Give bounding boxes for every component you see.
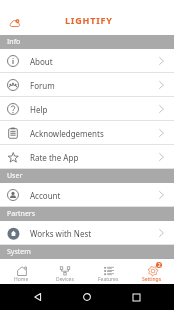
button[interactable]: Works with Nest: [0, 221, 174, 245]
button[interactable]: Recent apps: [125, 286, 147, 308]
staticText: About: [30, 56, 53, 67]
staticText: Devices: [56, 276, 74, 283]
button[interactable]: Devices: [43, 259, 86, 284]
button[interactable]: Back: [27, 286, 49, 308]
staticText: Settings: [142, 276, 162, 283]
button[interactable]: About: [0, 49, 174, 73]
button[interactable]: Forum: [0, 73, 174, 97]
button[interactable]: Lightify cloud: [3, 11, 27, 35]
staticText: Help: [30, 104, 48, 115]
button[interactable]: 2: [130, 259, 174, 284]
staticText: Partners: [7, 209, 36, 219]
staticText: Forum: [30, 80, 55, 91]
staticText: User: [7, 171, 23, 181]
button[interactable]: Home: [76, 286, 98, 308]
staticText: Account: [30, 190, 61, 201]
button[interactable]: Help: [0, 97, 174, 121]
button[interactable]: Rate the App: [0, 145, 174, 169]
staticText: Rate the App: [30, 152, 79, 163]
staticText: Home: [14, 276, 29, 283]
button[interactable]: Home: [0, 259, 43, 284]
staticText: 2: [158, 262, 161, 268]
staticText: Features: [98, 276, 119, 283]
staticText: LIGHTIFY: [65, 14, 113, 26]
staticText: Info: [7, 37, 21, 47]
button[interactable]: Features: [86, 259, 130, 284]
staticText: Acknowledgements: [30, 128, 104, 139]
button[interactable]: Account: [0, 183, 174, 207]
staticText: Works with Nest: [30, 228, 92, 239]
staticText: System: [7, 247, 31, 257]
button[interactable]: Acknowledgements: [0, 121, 174, 145]
